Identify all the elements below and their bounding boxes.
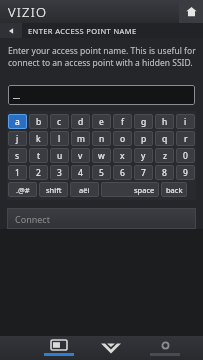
button[interactable]: 5 xyxy=(92,165,111,180)
staticText: VIZIO xyxy=(8,3,48,21)
staticText: m xyxy=(77,133,85,145)
staticText: 3 xyxy=(57,167,62,179)
staticText: 6 xyxy=(120,167,125,179)
button[interactable]: q xyxy=(155,131,174,146)
staticText: 2 xyxy=(36,167,41,179)
staticText: p xyxy=(141,133,147,145)
button[interactable]: w xyxy=(92,148,111,163)
button[interactable]: 7 xyxy=(134,165,153,180)
staticText: space xyxy=(134,185,155,195)
staticText: 9 xyxy=(183,167,188,179)
staticText: n xyxy=(99,133,105,145)
staticText: q xyxy=(162,133,168,145)
button[interactable]: .@# xyxy=(8,182,37,197)
button[interactable]: x xyxy=(113,148,132,163)
button[interactable]: Device xyxy=(34,336,84,360)
button[interactable] xyxy=(8,85,195,105)
button[interactable]: 8 xyxy=(155,165,174,180)
button[interactable]: r xyxy=(176,131,195,146)
staticText: o xyxy=(120,133,126,145)
staticText: shift xyxy=(46,185,62,195)
staticText: e xyxy=(99,116,104,128)
button[interactable]: t xyxy=(29,148,48,163)
staticText: r xyxy=(184,133,188,145)
button[interactable]: Home xyxy=(179,0,203,23)
button[interactable]: Settings xyxy=(140,336,190,360)
button[interactable]: VIZIO xyxy=(90,336,132,360)
button[interactable]: e xyxy=(92,114,111,129)
button[interactable]: u xyxy=(50,148,69,163)
button[interactable]: o xyxy=(113,131,132,146)
staticText: v xyxy=(78,150,83,162)
button[interactable]: Connect xyxy=(7,208,196,229)
staticText: t xyxy=(37,150,41,162)
button[interactable]: i xyxy=(176,114,195,129)
button[interactable]: 0 xyxy=(176,148,195,163)
staticText: i xyxy=(184,116,187,128)
button[interactable]: h xyxy=(155,114,174,129)
button[interactable]: m xyxy=(71,131,90,146)
staticText: .@# xyxy=(16,185,30,195)
staticText: Connect xyxy=(15,213,50,225)
button[interactable]: space xyxy=(101,182,159,197)
button[interactable]: d xyxy=(71,114,90,129)
button[interactable]: j xyxy=(8,131,27,146)
staticText: w xyxy=(98,150,105,162)
staticText: 8 xyxy=(162,167,167,179)
staticText: y xyxy=(141,150,146,162)
button[interactable]: 4 xyxy=(71,165,90,180)
button[interactable]: g xyxy=(134,114,153,129)
staticText: 4 xyxy=(78,167,83,179)
button[interactable]: 9 xyxy=(176,165,195,180)
button[interactable]: y xyxy=(134,148,153,163)
staticText: u xyxy=(57,150,63,162)
staticText: h xyxy=(162,116,168,128)
staticText: j xyxy=(16,133,19,145)
staticText: b xyxy=(36,116,42,128)
button[interactable]: Back xyxy=(0,23,22,38)
button[interactable]: 3 xyxy=(50,165,69,180)
staticText: s xyxy=(15,150,20,162)
staticText: z xyxy=(163,150,167,162)
button[interactable]: z xyxy=(155,148,174,163)
staticText: f xyxy=(121,116,124,128)
staticText: d xyxy=(78,116,84,128)
button[interactable]: back xyxy=(161,182,187,197)
button[interactable]: s xyxy=(8,148,27,163)
button[interactable]: aëi xyxy=(70,182,99,197)
button[interactable]: p xyxy=(134,131,153,146)
button[interactable]: 6 xyxy=(113,165,132,180)
button[interactable]: c xyxy=(50,114,69,129)
staticText: a xyxy=(15,116,20,128)
staticText: x xyxy=(120,150,125,162)
staticText: back xyxy=(166,185,183,195)
staticText: g xyxy=(141,116,147,128)
staticText: 7 xyxy=(141,167,146,179)
button[interactable]: a xyxy=(8,114,27,129)
button[interactable]: 1 xyxy=(8,165,27,180)
staticText: 5 xyxy=(99,167,104,179)
button[interactable]: k xyxy=(29,131,48,146)
staticText: l xyxy=(58,133,61,145)
staticText: c xyxy=(57,116,62,128)
staticText: 0 xyxy=(183,150,188,162)
button[interactable]: b xyxy=(29,114,48,129)
button[interactable]: 2 xyxy=(29,165,48,180)
button[interactable]: v xyxy=(71,148,90,163)
staticText: aëi xyxy=(79,185,90,195)
staticText: 1 xyxy=(15,167,20,179)
button[interactable]: n xyxy=(92,131,111,146)
staticText: Enter your access point name. This is us… xyxy=(8,45,197,69)
button[interactable]: l xyxy=(50,131,69,146)
staticText: k xyxy=(36,133,41,145)
staticText: ENTER ACCESS POINT NAME xyxy=(28,26,137,36)
button[interactable]: f xyxy=(113,114,132,129)
button[interactable]: shift xyxy=(39,182,68,197)
